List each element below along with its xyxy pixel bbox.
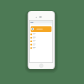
button[interactable]: Home bbox=[39, 64, 43, 68]
button[interactable]: List item 1 bbox=[30, 33, 53, 36]
button[interactable]: List item 5 bbox=[30, 46, 53, 49]
button[interactable]: Featured item bbox=[31, 26, 52, 32]
button[interactable]: Menu bbox=[30, 21, 53, 24]
button[interactable]: List item 3 bbox=[30, 39, 53, 42]
button[interactable]: List item 2 bbox=[30, 36, 53, 39]
button[interactable]: List item 4 bbox=[30, 43, 53, 46]
